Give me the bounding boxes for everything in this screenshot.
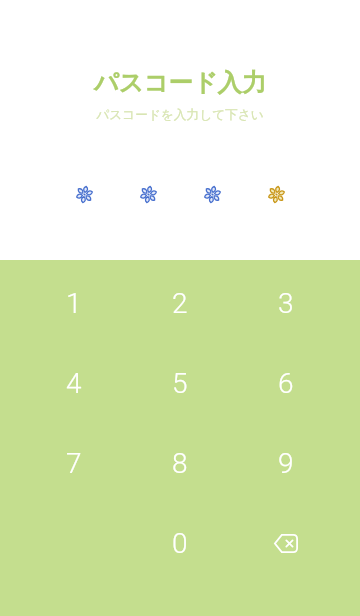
button[interactable]: Delete [233, 503, 339, 583]
staticText: パスコードを入力して下さい [0, 107, 360, 123]
staticText: 3 [278, 287, 294, 320]
staticText: 2 [172, 287, 188, 320]
staticText: 6 [278, 367, 294, 400]
staticText: 1 [66, 287, 82, 320]
button[interactable]: 7 [21, 423, 127, 503]
button[interactable]: 3 [233, 263, 339, 343]
staticText: 9 [278, 447, 294, 480]
button[interactable]: 2 [127, 263, 233, 343]
button[interactable]: 8 [127, 423, 233, 503]
staticText: 7 [66, 447, 82, 480]
button[interactable]: 1 [21, 263, 127, 343]
button[interactable]: 6 [233, 343, 339, 423]
staticText: 4 [66, 367, 82, 400]
staticText: 5 [172, 367, 188, 400]
button[interactable]: 4 [21, 343, 127, 423]
button[interactable]: 0 [127, 503, 233, 583]
staticText: 8 [172, 447, 188, 480]
staticText: パスコード入力 [0, 68, 360, 99]
button[interactable]: 9 [233, 423, 339, 503]
button[interactable]: 5 [127, 343, 233, 423]
staticText: 0 [172, 527, 188, 560]
